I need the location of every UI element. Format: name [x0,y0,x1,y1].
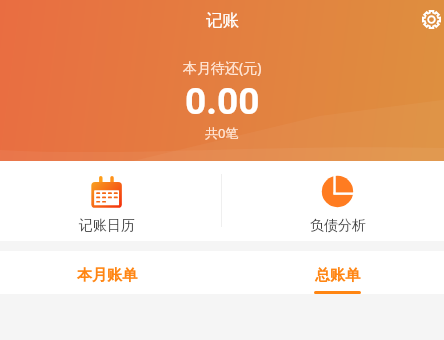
button[interactable]: 总账单 [222,251,444,294]
staticText: 共0笔 [205,124,239,142]
button[interactable]: 负债分析 [222,161,444,241]
staticText: 总账单 [315,266,360,285]
button[interactable]: Settings [414,2,444,37]
staticText: 本月账单 [77,266,137,285]
staticText: 本月待还(元) [183,58,262,77]
button[interactable]: 记账日历 [0,161,213,241]
button[interactable]: 本月账单 [0,251,222,294]
staticText: 记账日历 [79,217,135,235]
staticText: 记账 [206,10,239,31]
staticText: 0.00 [185,80,260,123]
staticText: 负债分析 [310,217,366,235]
